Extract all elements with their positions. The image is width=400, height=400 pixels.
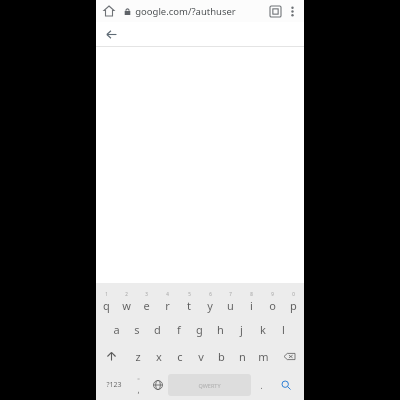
button[interactable]: ?123 [99, 372, 128, 398]
staticText: w [122, 298, 131, 313]
button[interactable]: Home [100, 2, 118, 20]
staticText: u [227, 298, 234, 313]
staticText: g [196, 322, 203, 337]
button[interactable]: a [106, 316, 126, 343]
button[interactable]: h [210, 316, 231, 343]
staticText: a [113, 322, 120, 337]
button[interactable]: 7 [220, 288, 241, 316]
button[interactable]: c [169, 343, 190, 370]
staticText: , [137, 384, 140, 395]
staticText: x [156, 349, 162, 364]
button[interactable]: Search [271, 372, 301, 398]
button[interactable]: 3 [136, 288, 157, 316]
button[interactable]: f [168, 316, 189, 343]
staticText: s [134, 322, 140, 337]
staticText: 6 [209, 291, 212, 297]
button[interactable]: Shift [96, 343, 127, 370]
staticText: 1 [105, 291, 108, 297]
button[interactable]: g [189, 316, 210, 343]
button[interactable]: Change language [148, 372, 168, 398]
staticText: k [260, 322, 266, 337]
button[interactable]: 9 [262, 288, 283, 316]
button[interactable]: Backspace [274, 343, 304, 370]
button[interactable]: Comma [128, 372, 148, 398]
button[interactable]: d [147, 316, 168, 343]
button[interactable]: More options [284, 3, 300, 19]
staticText: ° [137, 376, 140, 384]
staticText: q [103, 298, 110, 313]
button[interactable]: j [231, 316, 252, 343]
button[interactable]: 2 [116, 288, 136, 316]
button[interactable]: s [126, 316, 147, 343]
staticText: m [258, 349, 269, 364]
button[interactable]: z [127, 343, 148, 370]
staticText: . [260, 380, 263, 391]
button[interactable]: v [190, 343, 211, 370]
button[interactable]: 4 [157, 288, 178, 316]
button[interactable]: google.com/?authuser [124, 0, 266, 22]
staticText: 5 [188, 291, 191, 297]
button[interactable]: 0 [283, 288, 304, 316]
button[interactable]: Tabs [266, 2, 284, 20]
button[interactable]: Back [102, 25, 120, 43]
staticText: f [177, 322, 181, 337]
staticText: t [187, 298, 191, 313]
staticText: r [165, 298, 170, 313]
staticText: n [239, 349, 246, 364]
button[interactable]: 5 [178, 288, 199, 316]
button[interactable]: l [273, 316, 294, 343]
staticText: o [269, 298, 276, 313]
staticText: j [240, 322, 243, 337]
staticText: b [218, 349, 225, 364]
button[interactable]: 8 [241, 288, 262, 316]
staticText: y [207, 298, 213, 313]
staticText: 4 [166, 291, 169, 297]
staticText: 2 [125, 291, 128, 297]
staticText: v [198, 349, 204, 364]
button[interactable]: 6 [199, 288, 220, 316]
button[interactable]: x [148, 343, 169, 370]
staticText: ?123 [106, 380, 122, 390]
staticText: google.com/?authuser [135, 5, 236, 18]
button[interactable]: Period [251, 372, 271, 398]
staticText: h [217, 322, 224, 337]
staticText: 3 [145, 291, 148, 297]
staticText: 0 [292, 291, 295, 297]
button[interactable]: b [211, 343, 232, 370]
staticText: 7 [229, 291, 232, 297]
staticText: l [282, 322, 285, 337]
button[interactable]: m [253, 343, 274, 370]
staticText: QWERTY [198, 382, 221, 389]
button[interactable]: 1 [96, 288, 116, 316]
staticText: e [143, 298, 150, 313]
button[interactable]: n [232, 343, 253, 370]
button[interactable]: k [252, 316, 273, 343]
staticText: c [177, 349, 183, 364]
staticText: i [250, 298, 253, 313]
staticText: 9 [271, 291, 274, 297]
staticText: 8 [250, 291, 253, 297]
staticText: z [135, 349, 141, 364]
staticText: d [154, 322, 161, 337]
staticText: p [290, 298, 297, 313]
button[interactable]: Space [168, 374, 251, 396]
